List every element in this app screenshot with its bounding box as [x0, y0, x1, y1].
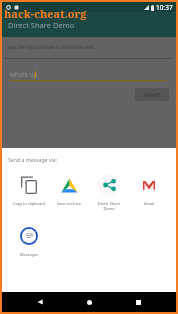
staticText: Save to Drive — [49, 201, 89, 206]
staticText: Send a message via: — [8, 156, 58, 163]
staticText: Copy to clipboard — [9, 201, 49, 206]
staticText: use the input below to share the text. — [8, 44, 96, 51]
button[interactable]: Messages — [9, 224, 49, 257]
button[interactable]: Recent apps — [127, 292, 149, 312]
staticText: Direct Share Demo — [89, 201, 129, 212]
staticText: hack-cheat.org — [4, 6, 87, 21]
button[interactable]: Gmail — [129, 173, 169, 206]
button[interactable]: SHARE — [135, 88, 169, 101]
staticText: Direct Share Demo — [8, 20, 75, 30]
button[interactable]: Home — [78, 292, 100, 312]
staticText: Messages — [9, 252, 49, 257]
staticText: SHARE — [143, 91, 161, 98]
button[interactable]: Direct Share Demo — [89, 173, 129, 212]
button[interactable]: Copy to clipboard — [9, 173, 49, 206]
staticText: 10:37 — [156, 3, 173, 12]
staticText: whats up — [10, 70, 38, 79]
button[interactable]: Back — [29, 292, 51, 312]
button[interactable]: Save to Drive — [49, 173, 89, 206]
staticText: Gmail — [129, 201, 169, 206]
